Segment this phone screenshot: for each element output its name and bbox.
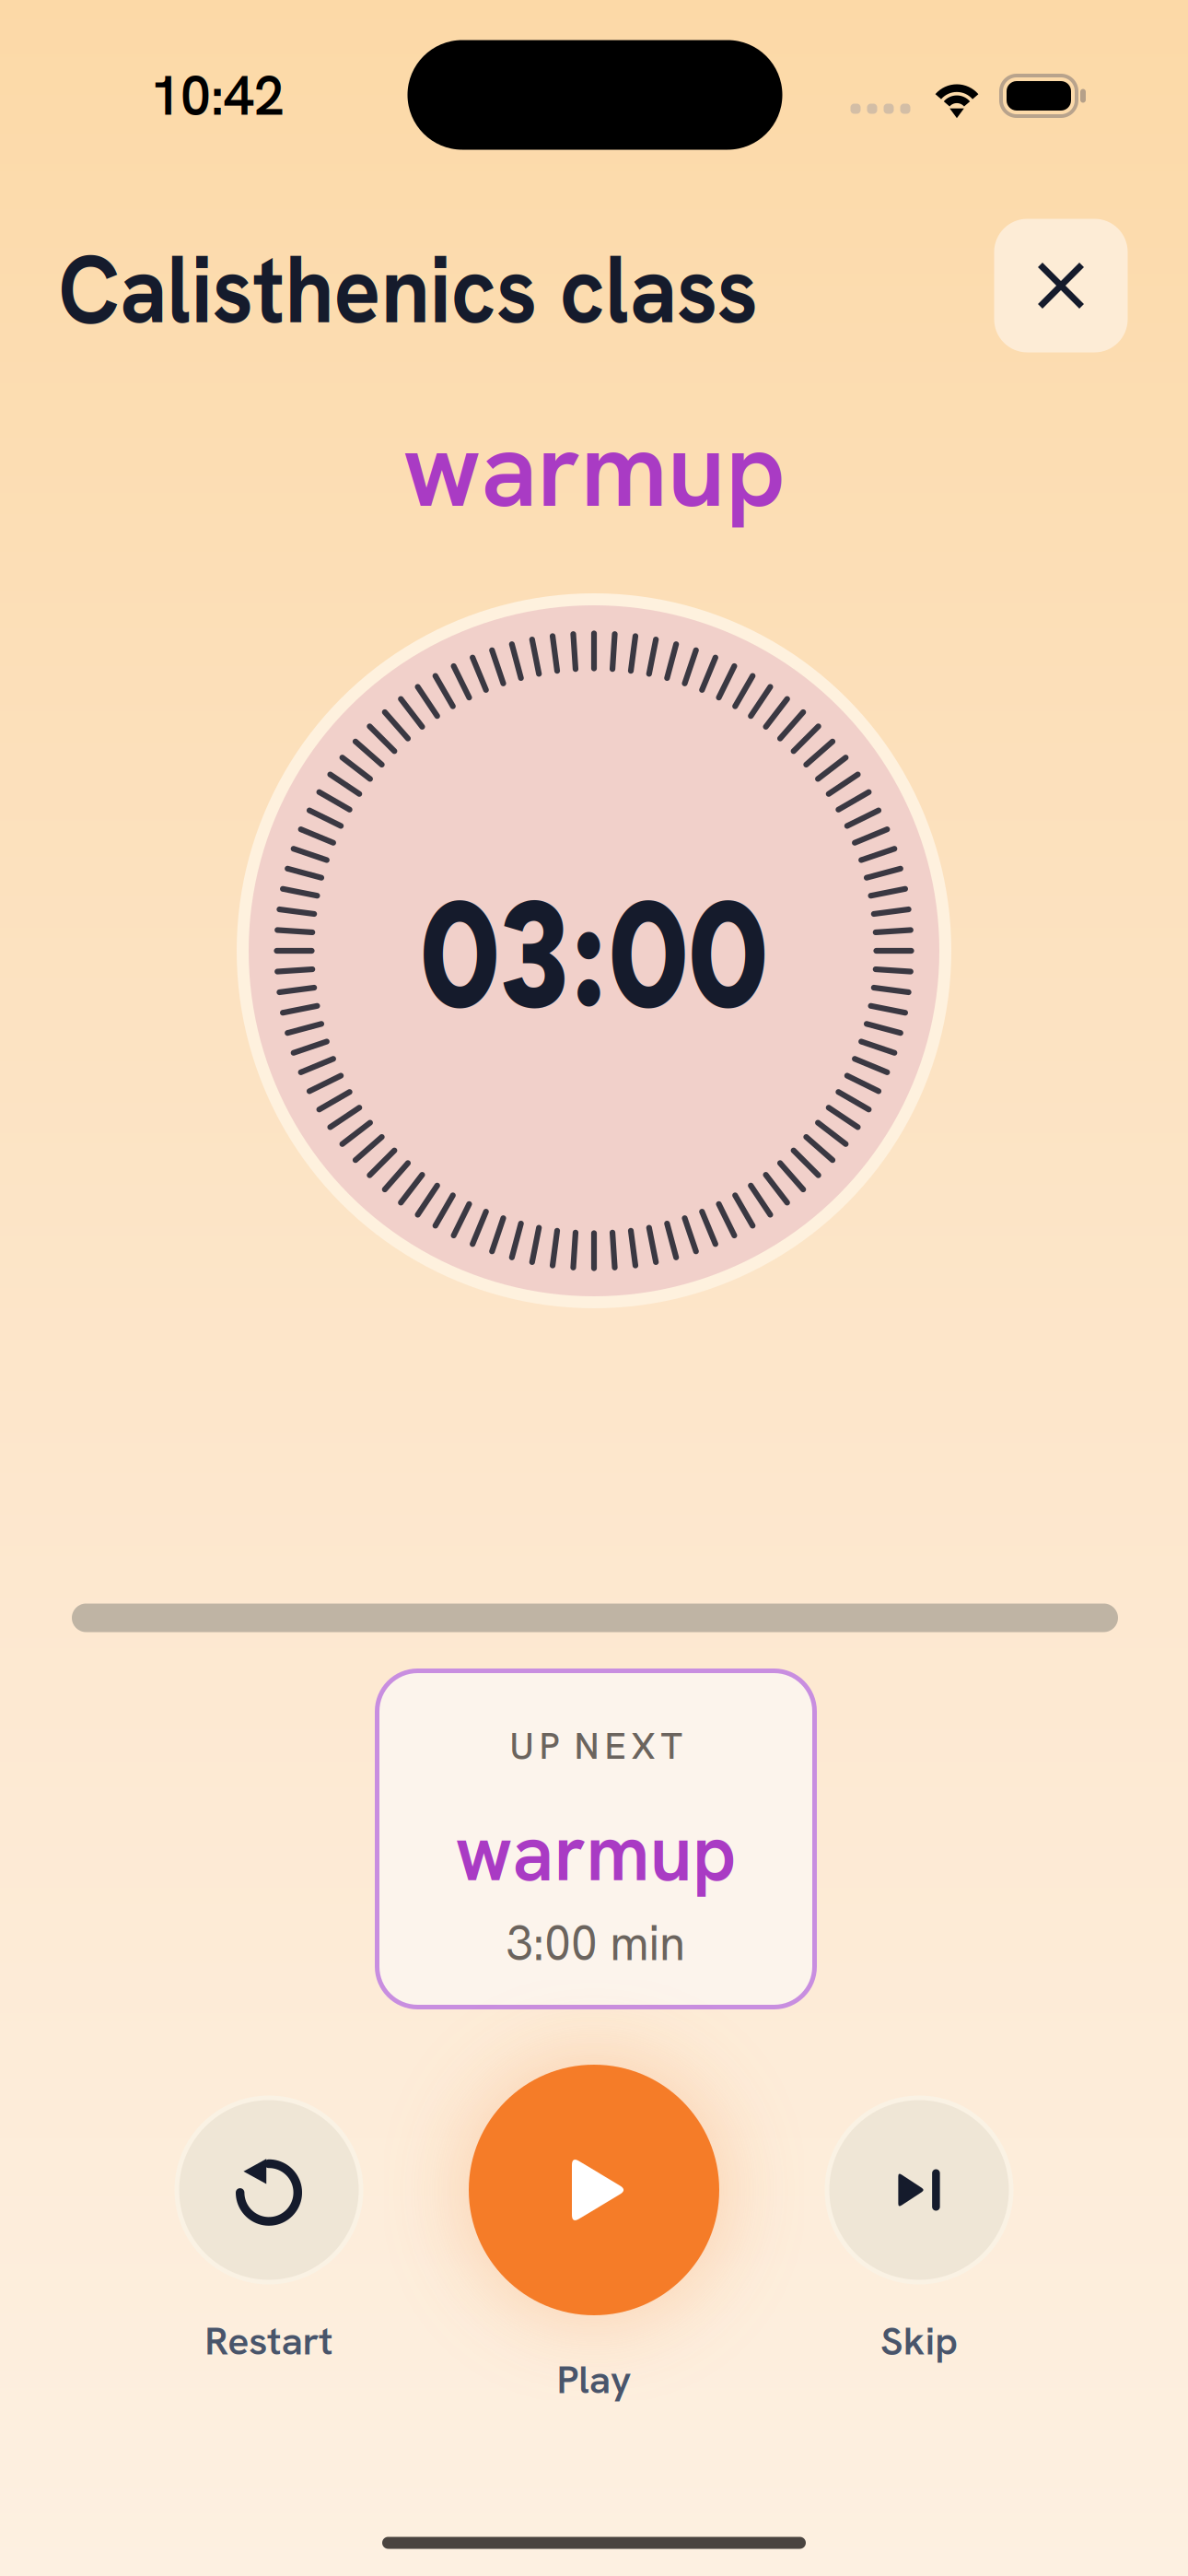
staticText: warmup	[400, 400, 788, 538]
staticText: Restart	[207, 2316, 331, 2366]
staticText: Skip	[882, 2316, 956, 2366]
staticText: 3:00 min	[503, 1911, 689, 1975]
button[interactable]: Restart	[177, 2098, 361, 2282]
staticText: 03:00	[383, 865, 805, 1044]
staticText: U P N E X T	[510, 1722, 682, 1770]
staticText: Calisthenics class	[26, 228, 790, 351]
staticText: warmup	[446, 1799, 745, 1905]
button[interactable]: Play	[469, 2065, 719, 2315]
staticText: Play	[558, 2355, 630, 2405]
button[interactable]: Skip	[827, 2098, 1011, 2282]
button[interactable]: Close	[994, 219, 1128, 352]
staticText: 10:42	[150, 61, 285, 131]
